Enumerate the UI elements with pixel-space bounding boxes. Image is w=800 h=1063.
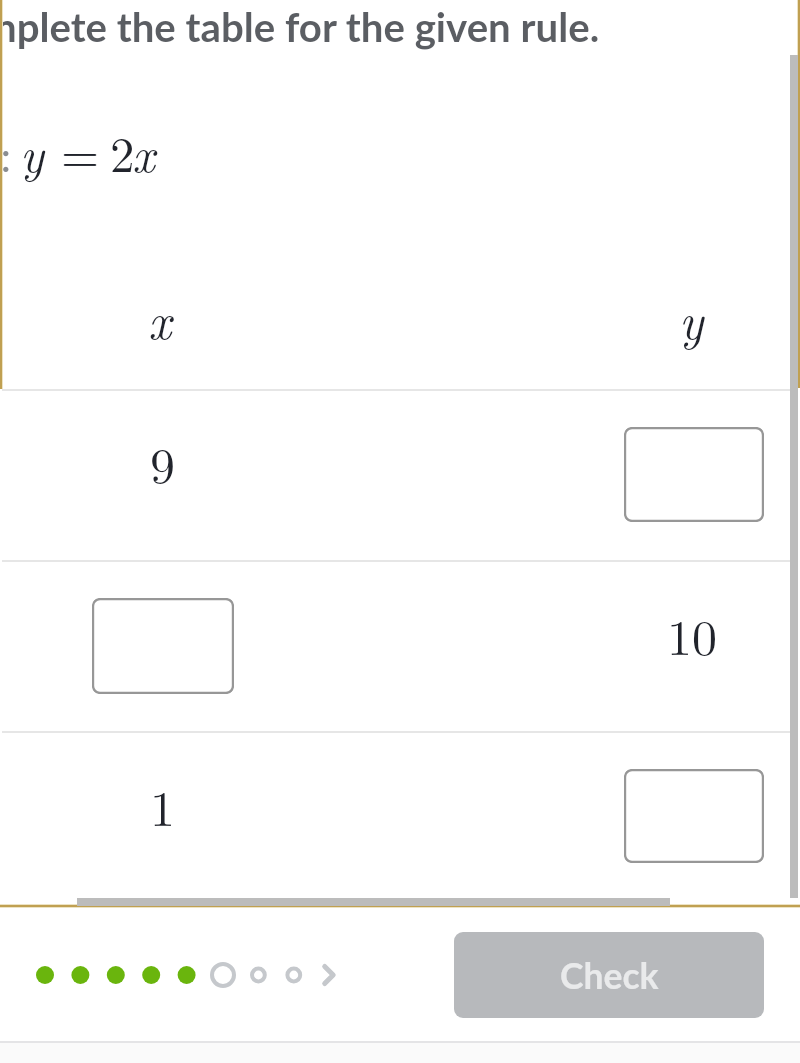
staticText: Check [560,954,659,997]
staticText: mplete the table for the given rule. [0,2,600,50]
staticText: = [61,117,100,186]
button[interactable]: Answer for y when x is 9 [624,427,764,522]
button[interactable]: Exercise progress [36,955,346,995]
staticText: : [0,117,13,186]
staticText: 10 [667,599,717,670]
staticText: 1 [150,770,175,841]
staticText: 2 [110,117,135,186]
staticText: x [132,117,155,186]
button[interactable]: Answer for y when x is 1 [624,769,764,863]
button[interactable]: Check [454,932,764,1018]
staticText: 9 [150,427,175,498]
staticText: y [20,117,44,186]
button[interactable]: Answer for x when y is 10 [92,598,234,694]
staticText: y [679,283,704,354]
staticText: x [148,283,172,354]
